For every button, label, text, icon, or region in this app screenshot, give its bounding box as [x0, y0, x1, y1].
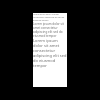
staticText: Lorem ipsum dolor sit amet consectetur a…: [33, 22, 67, 38]
staticText: Lorem ipsum dolor sit amet consectetur a…: [33, 38, 67, 68]
staticText: Lorem ipsum dolor sit amet consectetur a…: [33, 13, 67, 22]
